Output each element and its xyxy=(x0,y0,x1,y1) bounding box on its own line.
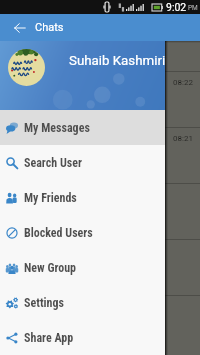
staticText: Search User xyxy=(24,156,82,170)
staticText: Settings xyxy=(24,296,64,310)
button[interactable]: Settings xyxy=(0,285,165,320)
staticText: Blocked Users xyxy=(24,226,93,240)
staticText: Chats xyxy=(35,21,64,34)
button[interactable]: Suhaib Kashmiri xyxy=(0,41,165,110)
staticText: 08:21 xyxy=(173,134,193,143)
staticText: PM xyxy=(188,4,198,12)
staticText: Suhaib Kashmiri xyxy=(69,53,166,69)
button[interactable]: New Group xyxy=(0,250,165,285)
staticText: 9:02 xyxy=(166,1,187,13)
staticText: My Friends xyxy=(24,191,77,205)
staticText: New Group xyxy=(24,261,77,275)
button[interactable]: Share App xyxy=(0,320,165,355)
button[interactable]: Back xyxy=(8,16,32,40)
button[interactable]: My Friends xyxy=(0,180,165,215)
button[interactable]: Blocked Users xyxy=(0,215,165,250)
staticText: My Messages xyxy=(24,121,90,135)
button[interactable]: My Messages xyxy=(0,110,165,145)
staticText: Share App xyxy=(24,331,74,345)
staticText: 08:22 xyxy=(173,78,193,87)
button[interactable]: Search User xyxy=(0,145,165,180)
